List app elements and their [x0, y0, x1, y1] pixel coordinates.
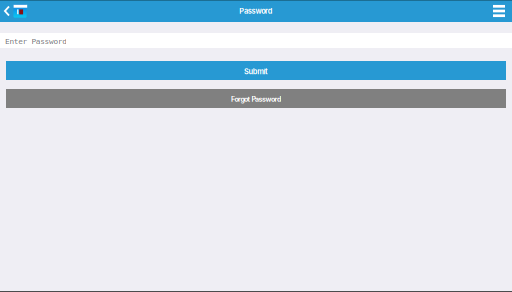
button[interactable]: Submit [6, 61, 506, 80]
button[interactable]: Forgot Password [6, 89, 506, 108]
staticText: Submit [244, 67, 268, 76]
staticText: Forgot Password [231, 95, 281, 103]
button[interactable]: Back [0, 0, 33, 21]
staticText: Enter Password [5, 37, 67, 46]
staticText: Password [239, 7, 273, 15]
button[interactable]: Enter Password [0, 33, 512, 48]
button[interactable]: Menu [487, 0, 512, 21]
